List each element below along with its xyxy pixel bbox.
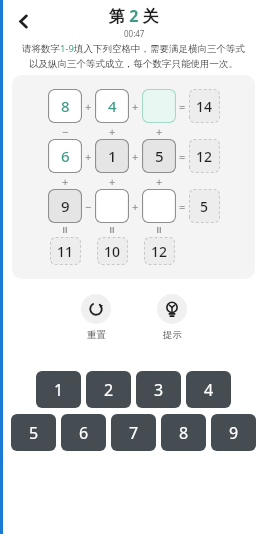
staticText: 9 <box>229 422 239 444</box>
staticText: 7 <box>129 422 139 444</box>
staticText: 14 <box>196 97 213 116</box>
staticText: 4 <box>204 379 214 401</box>
button[interactable]: 5 <box>11 414 56 451</box>
staticText: 2 <box>104 379 114 401</box>
staticText: + <box>132 99 139 114</box>
button[interactable]: 1 <box>95 139 129 173</box>
staticText: 重置 <box>87 329 106 341</box>
button[interactable]: 3 <box>136 371 181 408</box>
staticText: = <box>179 199 186 214</box>
button[interactable]: Back <box>8 6 38 36</box>
staticText: 00:47 <box>124 28 145 39</box>
staticText: 6 <box>61 146 70 166</box>
staticText: 第 2 关 <box>109 5 159 27</box>
button[interactable]: Reset <box>81 294 111 341</box>
staticText: 12 <box>151 242 168 261</box>
staticText: = <box>179 99 186 114</box>
button[interactable]: 9 <box>211 414 256 451</box>
staticText: 8 <box>61 96 70 116</box>
staticText: 9 <box>61 196 70 216</box>
button[interactable]: Hint <box>157 294 187 341</box>
button[interactable]: 8 <box>161 414 206 451</box>
staticText: + <box>62 174 69 189</box>
button[interactable]: 9 <box>48 189 82 223</box>
staticText: + <box>85 99 92 114</box>
staticText: 1 <box>54 379 64 401</box>
staticText: 提示 <box>163 329 182 341</box>
button[interactable]: 2 <box>86 371 131 408</box>
staticText: 5 <box>200 197 209 216</box>
staticText: 5 <box>155 146 164 166</box>
staticText: + <box>109 174 116 189</box>
button[interactable]: Empty cell <box>95 189 129 223</box>
button[interactable]: 5 <box>142 139 176 173</box>
staticText: = <box>179 149 186 164</box>
button[interactable]: 8 <box>48 89 82 123</box>
staticText: 5 <box>29 422 39 444</box>
staticText: + <box>132 149 139 164</box>
staticText: 8 <box>179 422 189 444</box>
staticText: 12 <box>196 147 213 166</box>
staticText: 4 <box>108 96 117 116</box>
button[interactable]: 6 <box>48 139 82 173</box>
staticText: + <box>109 124 116 139</box>
button[interactable]: 4 <box>186 371 231 408</box>
staticText: 6 <box>79 422 89 444</box>
staticText: 请将数字1-9填入下列空格中，需要满足横向三个等式以及纵向三个等式成立，每个数字… <box>20 42 247 70</box>
staticText: − <box>62 124 69 139</box>
staticText: − <box>85 199 92 214</box>
button[interactable]: Empty cell <box>142 89 176 123</box>
staticText: 3 <box>154 379 164 401</box>
staticText: 11 <box>57 242 74 261</box>
button[interactable]: 4 <box>95 89 129 123</box>
staticText: + <box>156 124 163 139</box>
button[interactable]: 1 <box>36 371 81 408</box>
staticText: + <box>156 174 163 189</box>
staticText: 1 <box>108 146 117 166</box>
staticText: + <box>132 199 139 214</box>
button[interactable]: 7 <box>111 414 156 451</box>
staticText: + <box>85 149 92 164</box>
button[interactable]: Empty cell <box>142 189 176 223</box>
button[interactable]: 6 <box>61 414 106 451</box>
staticText: 10 <box>104 242 121 261</box>
